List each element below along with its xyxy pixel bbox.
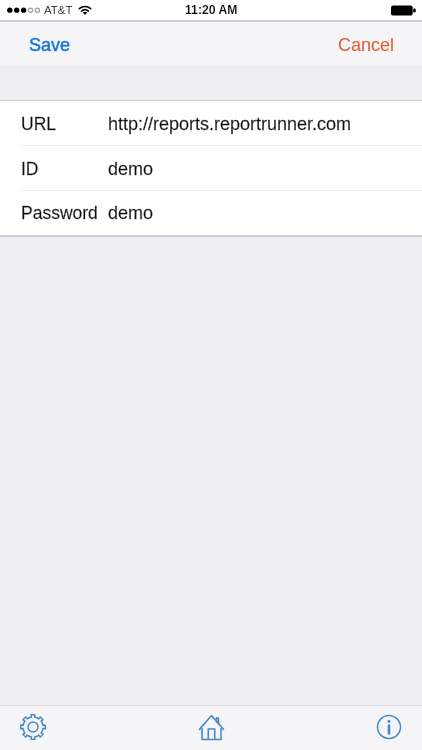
button[interactable]: Settings bbox=[11, 706, 55, 750]
staticText: demo bbox=[108, 203, 154, 223]
button[interactable]: ID bbox=[0, 146, 422, 191]
staticText: URL bbox=[21, 114, 57, 134]
button[interactable]: Cancel bbox=[322, 22, 422, 66]
staticText: Cancel bbox=[338, 35, 395, 55]
button[interactable]: Home bbox=[189, 706, 233, 750]
staticText: ID bbox=[21, 159, 39, 179]
staticText: demo bbox=[108, 159, 154, 179]
staticText: http://reports.reportrunner.com bbox=[108, 114, 352, 134]
staticText: AT&T bbox=[44, 4, 73, 17]
button[interactable]: Password bbox=[0, 191, 422, 235]
staticText: Save bbox=[29, 35, 71, 55]
staticText: Password bbox=[21, 203, 98, 223]
staticText: demo bbox=[108, 203, 154, 223]
staticText: URL bbox=[21, 114, 57, 134]
staticText: Cancel bbox=[338, 35, 395, 55]
button[interactable]: URL bbox=[0, 101, 422, 146]
staticText: Save bbox=[29, 35, 71, 55]
staticText: http://reports.reportrunner.com bbox=[108, 114, 352, 134]
staticText: 11:20 AM bbox=[185, 3, 238, 17]
button[interactable]: Info bbox=[367, 706, 411, 750]
staticText: demo bbox=[108, 159, 154, 179]
button[interactable]: Save bbox=[0, 22, 87, 66]
staticText: ID bbox=[21, 159, 39, 179]
staticText: Password bbox=[21, 203, 98, 223]
